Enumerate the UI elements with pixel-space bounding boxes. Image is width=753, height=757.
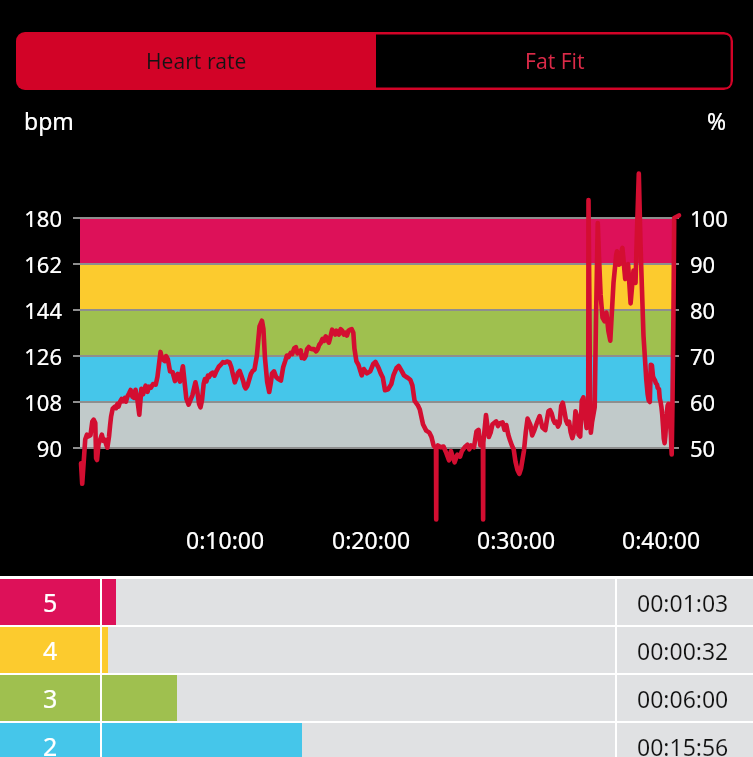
staticText: 90 <box>36 433 62 463</box>
staticText: 90 <box>690 249 716 279</box>
staticText: 126 <box>24 341 62 371</box>
staticText: 2 <box>43 729 58 757</box>
staticText: 3 <box>43 681 58 715</box>
button[interactable]: 3 <box>0 675 753 721</box>
staticText: % <box>707 105 727 136</box>
button[interactable]: 2 <box>0 723 753 757</box>
staticText: 00:06:00 <box>637 683 729 714</box>
staticText: bpm <box>24 105 74 136</box>
staticText: 108 <box>24 387 62 417</box>
button[interactable]: Fat Fit <box>376 32 733 90</box>
staticText: 144 <box>24 295 62 325</box>
staticText: 162 <box>24 249 62 279</box>
staticText: 100 <box>690 203 728 233</box>
staticText: 0:20:00 <box>332 524 411 555</box>
staticText: 0:40:00 <box>622 524 701 555</box>
staticText: 70 <box>690 341 716 371</box>
staticText: 00:01:03 <box>637 587 729 618</box>
staticText: Heart rate <box>146 47 247 76</box>
staticText: 60 <box>690 387 716 417</box>
other: Heart rate graph <box>0 150 753 515</box>
button[interactable]: 5 <box>0 579 753 625</box>
button[interactable]: 4 <box>0 627 753 673</box>
staticText: 4 <box>43 633 58 667</box>
staticText: 00:00:32 <box>637 635 729 666</box>
staticText: 180 <box>24 203 62 233</box>
staticText: 00:15:56 <box>637 731 729 757</box>
staticText: Fat Fit <box>525 47 585 76</box>
button[interactable]: Heart rate <box>16 32 376 90</box>
staticText: 5 <box>43 585 58 619</box>
staticText: 0:10:00 <box>186 524 265 555</box>
staticText: 80 <box>690 295 716 325</box>
staticText: 0:30:00 <box>477 524 556 555</box>
staticText: 50 <box>690 433 716 463</box>
